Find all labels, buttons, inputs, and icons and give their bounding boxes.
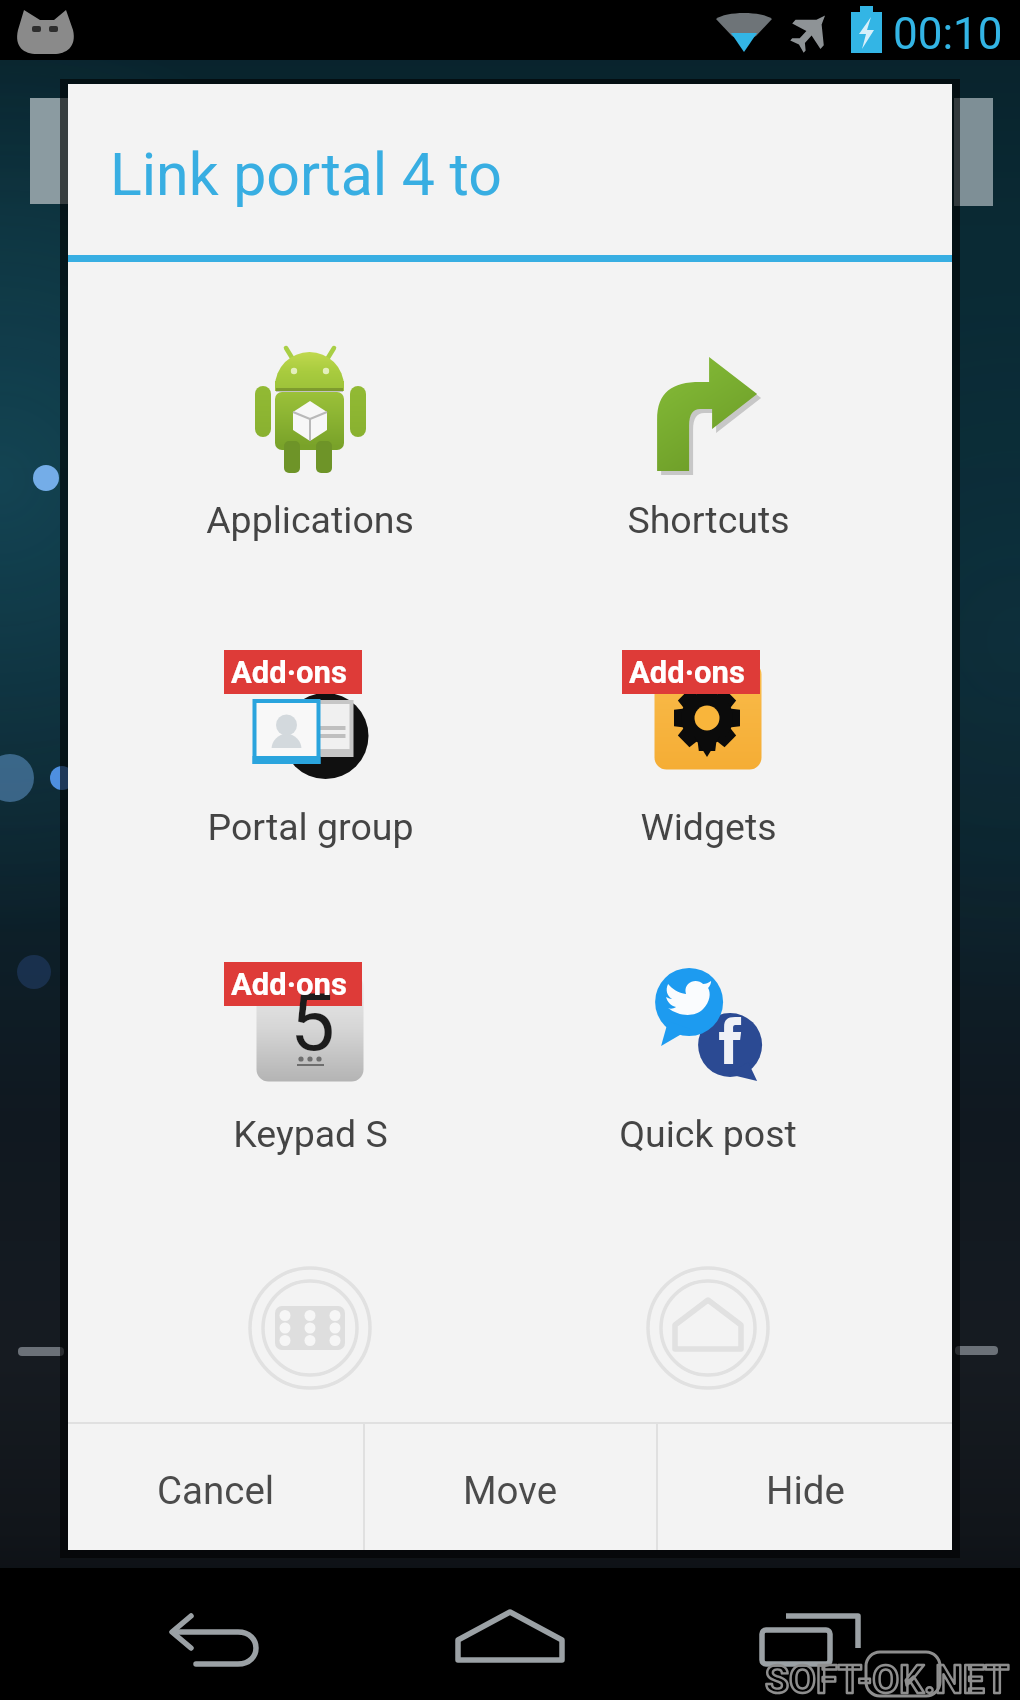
staticText: 00:10 <box>893 8 1003 60</box>
button[interactable]: Add·ons <box>568 621 848 855</box>
staticText: Applications <box>206 498 414 542</box>
button[interactable]: Cancel <box>68 1424 363 1550</box>
button[interactable]: Applications <box>170 316 450 548</box>
staticText: Move <box>463 1468 558 1513</box>
staticText: Widgets <box>640 805 777 849</box>
button[interactable]: Hide <box>658 1424 952 1550</box>
button[interactable]: All apps <box>240 1258 380 1398</box>
button[interactable]: Back <box>134 1568 294 1700</box>
button[interactable]: Move <box>365 1424 656 1550</box>
staticText: Add·ons <box>629 654 745 690</box>
staticText: Shortcuts <box>627 498 790 542</box>
button[interactable]: Add·ons <box>170 621 450 855</box>
staticText: Quick post <box>619 1112 797 1156</box>
button[interactable]: Recent apps <box>730 1568 890 1700</box>
button[interactable]: Home <box>430 1568 590 1700</box>
button[interactable]: 5 <box>170 933 450 1162</box>
button[interactable]: Quick post <box>568 933 848 1162</box>
staticText: Link portal 4 to <box>110 140 502 209</box>
button[interactable]: Home <box>638 1258 778 1398</box>
staticText: SOFT-OK.NET <box>765 1657 1010 1700</box>
staticText: 5 <box>290 976 335 1070</box>
staticText: Portal group <box>207 805 414 849</box>
staticText: Add·ons <box>231 966 347 1002</box>
staticText: Hide <box>766 1468 845 1513</box>
staticText: Keypad S <box>233 1112 388 1156</box>
button[interactable]: Shortcuts <box>568 316 848 548</box>
staticText: Cancel <box>157 1468 275 1513</box>
staticText: Add·ons <box>231 654 347 690</box>
